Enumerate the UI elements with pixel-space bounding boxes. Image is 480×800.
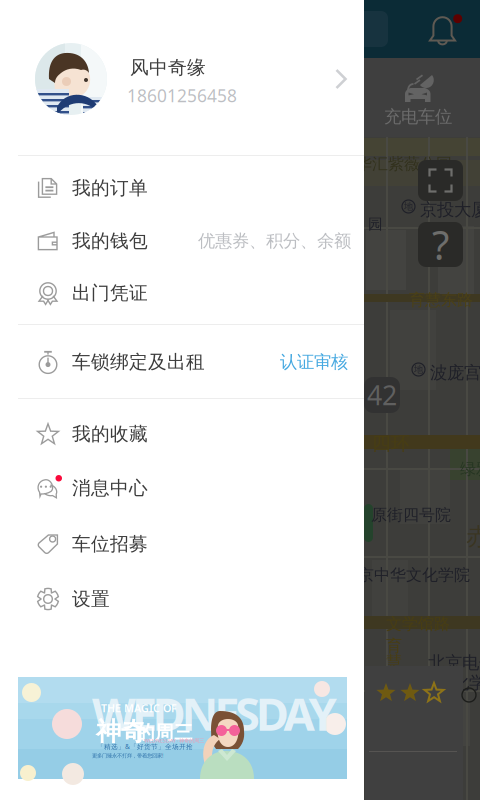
- button[interactable]: 消息中心: [0, 461, 364, 514]
- staticText: 18601256458: [127, 84, 237, 107]
- staticText: 京中华文化学院: [358, 565, 470, 585]
- staticText: 风中奇缘: [130, 56, 206, 79]
- staticText: 育慧东路: [409, 290, 473, 310]
- staticText: 育: [386, 636, 402, 656]
- staticText: 化学: [452, 672, 480, 693]
- staticText: 我的订单: [72, 176, 148, 199]
- staticText: 42: [367, 377, 397, 413]
- staticText: 文学馆路: [386, 614, 450, 634]
- staticText: 认证审核: [280, 351, 348, 373]
- staticText: 华汇紫薇公园: [356, 154, 452, 174]
- staticText: 车锁绑定及出租: [72, 350, 205, 373]
- staticText: 慧: [386, 652, 402, 672]
- staticText: 波庞宫: [430, 362, 480, 383]
- button[interactable]: 我的钱包: [0, 214, 364, 267]
- staticText: ?: [432, 218, 449, 271]
- staticText: 更多门臻永不打烊，带着您回家!: [92, 752, 163, 759]
- staticText: 「精选」&「好货节」全场开抢: [97, 742, 193, 751]
- staticText: 优惠券、积分、余额: [198, 230, 351, 252]
- staticText: 京投大厦: [420, 199, 480, 220]
- staticText: 神奇: [96, 716, 146, 747]
- staticText: 的周三: [136, 721, 193, 744]
- staticText: 四环: [372, 432, 410, 455]
- staticText: 地: [404, 201, 413, 212]
- staticText: 车位招募: [72, 532, 148, 555]
- staticText: WEDNESDAY · 神奇的周三: [144, 737, 204, 744]
- staticText: 设置: [72, 587, 110, 610]
- button[interactable]: 我的收藏: [0, 407, 364, 460]
- staticText: 园: [368, 215, 383, 233]
- staticText: 北京电子: [428, 652, 480, 673]
- staticText: 赤: [466, 522, 480, 551]
- staticText: 充电车位: [384, 106, 452, 127]
- staticText: 地: [414, 364, 423, 375]
- staticText: 我的收藏: [72, 422, 148, 445]
- button[interactable]: Wednesday promotion banner: [18, 677, 347, 779]
- button[interactable]: Notifications: [428, 14, 468, 50]
- staticText: 消息中心: [72, 476, 148, 499]
- staticText: 原街四号院: [371, 505, 451, 525]
- staticText: 出门凭证: [72, 281, 148, 304]
- button[interactable]: Help: [418, 222, 463, 267]
- staticText: 我的钱包: [72, 229, 148, 252]
- button[interactable]: 车位招募: [0, 517, 364, 570]
- button[interactable]: 风中奇缘: [0, 0, 364, 155]
- button[interactable]: 出门凭证: [0, 266, 364, 319]
- staticText: 绿雅: [460, 459, 480, 479]
- button[interactable]: 车锁绑定及出租: [0, 335, 364, 388]
- button[interactable]: 我的订单: [0, 161, 364, 214]
- button[interactable]: 设置: [0, 572, 364, 625]
- staticText: THE MAGIC OF: [101, 701, 177, 715]
- staticText: WEDNESDAY: [92, 683, 336, 743]
- button[interactable]: Scan QR code: [418, 160, 463, 201]
